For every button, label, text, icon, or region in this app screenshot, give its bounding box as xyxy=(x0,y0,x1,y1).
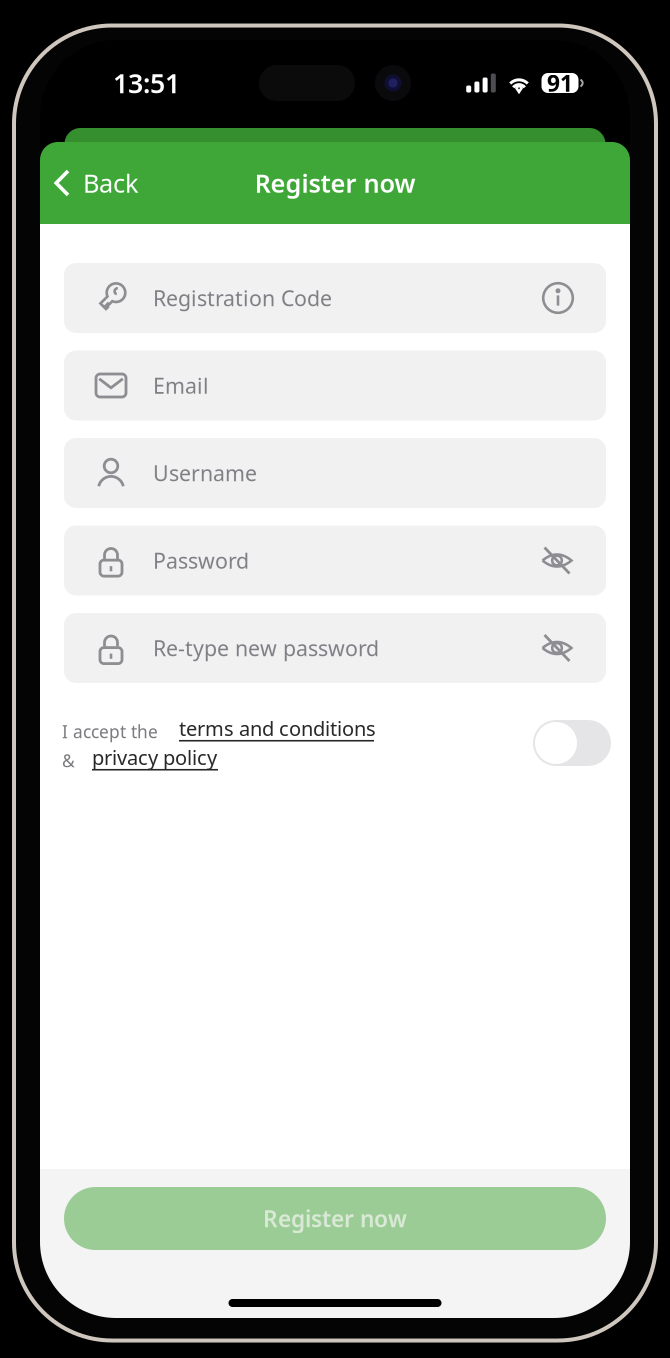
staticText: Re-type new password xyxy=(153,634,379,662)
button[interactable]: Re-type new password xyxy=(64,613,606,683)
button[interactable]: Registration Code xyxy=(64,263,606,333)
button[interactable]: privacy policy xyxy=(92,750,218,770)
button[interactable]: Accept terms and conditions xyxy=(533,720,611,766)
staticText: I accept the xyxy=(62,720,158,743)
button[interactable]: Email xyxy=(64,350,606,420)
staticText: Password xyxy=(153,546,249,575)
staticText: Username xyxy=(153,459,257,487)
button[interactable]: Register now xyxy=(64,1187,606,1250)
staticText: 91 xyxy=(547,68,573,98)
staticText: Back xyxy=(83,166,139,200)
staticText: Email xyxy=(153,371,209,400)
staticText: Register now xyxy=(254,166,415,200)
staticText: Register now xyxy=(263,1203,407,1233)
staticText: privacy policy xyxy=(92,744,217,771)
staticText: 13:51 xyxy=(113,65,180,101)
staticText: terms and conditions xyxy=(179,715,376,741)
button[interactable]: Password xyxy=(64,525,606,595)
button[interactable]: terms and conditions xyxy=(179,721,374,741)
button[interactable]: Back xyxy=(40,151,153,215)
staticText: Registration Code xyxy=(153,284,332,312)
button[interactable]: Username xyxy=(64,438,606,508)
staticText: & xyxy=(62,749,75,772)
